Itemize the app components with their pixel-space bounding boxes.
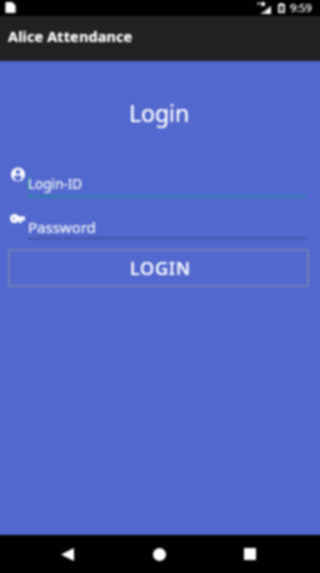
button[interactable]: LOGIN (8, 249, 309, 287)
staticText: LOGIN (130, 256, 191, 281)
staticText: Password (28, 217, 96, 237)
button[interactable]: Back (47, 535, 87, 573)
staticText: Login-ID (28, 175, 83, 193)
button[interactable]: Home (139, 535, 179, 573)
button[interactable]: Recent apps (230, 535, 270, 573)
staticText: Alice Attendance (8, 26, 133, 46)
staticText: Login (129, 97, 190, 128)
button[interactable]: Alice Attendance (0, 17, 320, 61)
staticText: 9:59 (290, 0, 312, 15)
